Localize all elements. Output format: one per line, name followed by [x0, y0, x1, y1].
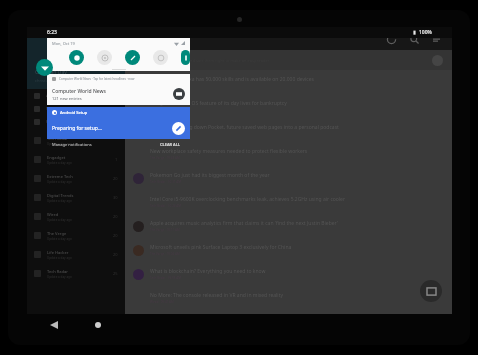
button[interactable]: Quick setting [153, 50, 168, 65]
button[interactable]: Amazon says Alexa has 50,000 skills and … [125, 70, 452, 94]
staticText: Life Hacker [47, 250, 69, 255]
button[interactable]: Quick setting [69, 50, 84, 65]
staticText: Pokemon Go just had its biggest month of… [150, 172, 270, 179]
button[interactable]: Computer World News · Tap for latest hea… [47, 74, 190, 105]
staticText: 20 [113, 233, 118, 238]
staticText: New workplace safety measures needed to … [150, 148, 308, 155]
staticText: Tech Radar [47, 136, 69, 141]
button[interactable]: Tech Radar [27, 131, 125, 150]
button[interactable]: Google's Chrome OS feature of its day li… [125, 94, 452, 118]
button[interactable]: Home [87, 314, 109, 336]
staticText: Read later [46, 119, 66, 124]
staticText: 20 [113, 214, 118, 219]
button[interactable]: Android Setup [47, 107, 190, 139]
staticText: Update a day ago [47, 161, 72, 165]
button[interactable]: Life Hacker [27, 245, 125, 264]
button[interactable]: Apple acquires music analytics firm that… [125, 214, 452, 238]
staticText: Starred [46, 106, 60, 111]
staticText: Update a day ago [47, 199, 72, 203]
staticText: What is blockchain? Everything you need … [150, 268, 266, 275]
button[interactable]: Sort [430, 32, 444, 46]
button[interactable]: All articles [27, 89, 125, 102]
staticText: Microsoft unveils pink Surface Laptop 3 … [150, 244, 292, 251]
button[interactable]: Refresh [384, 32, 398, 46]
button[interactable]: Wired [27, 207, 125, 226]
staticText: The Verge [47, 231, 67, 236]
staticText: Digital Trends [47, 193, 74, 198]
staticText: Update a day ago [47, 142, 72, 146]
staticText: Extreme Tech [47, 174, 73, 179]
button[interactable]: CLEAR ALL [118, 139, 190, 149]
button[interactable]: New workplace safety measures needed to … [125, 142, 452, 166]
staticText: 25 [113, 271, 118, 276]
staticText: Update a day ago [47, 237, 72, 241]
staticText: Christian Dav [35, 69, 67, 76]
staticText: Computer World News · Tap for latest hea… [59, 77, 135, 81]
button[interactable]: Search [407, 32, 421, 46]
staticText: Tech Radar [47, 269, 69, 274]
staticText: Computer World News [52, 88, 107, 95]
staticText: Apple acquires music analytics firm that… [150, 220, 338, 227]
staticText: How to organize your feeds and sort them… [135, 58, 270, 63]
staticText: Update a day ago [47, 180, 72, 184]
button[interactable]: No More: The console released in VR and … [125, 286, 452, 310]
staticText: Wired [47, 212, 59, 217]
staticText: Update a day ago [47, 218, 72, 222]
button[interactable]: Tech Radar [27, 264, 125, 283]
button[interactable]: Mark all read [420, 280, 442, 302]
button[interactable]: Back [43, 314, 65, 336]
staticText: All articles [46, 93, 66, 98]
staticText: 30 [113, 195, 118, 200]
button[interactable]: Manage notifications [47, 139, 118, 149]
staticText: Amazon says Alexa has 50,000 skills and … [150, 76, 314, 83]
button[interactable]: What is blockchain? Everything you need … [125, 262, 452, 286]
button[interactable]: Microsoft unveils pink Surface Laptop 3 … [125, 238, 452, 262]
staticText: Update a day ago [47, 275, 72, 279]
button[interactable]: Wi-Fi [36, 59, 53, 76]
button[interactable]: Quick setting [125, 50, 140, 65]
staticText: 20 [113, 176, 118, 181]
staticText: Update a day ago [47, 256, 72, 260]
staticText: Android Setup [60, 110, 88, 115]
staticText: 100% [419, 29, 432, 36]
button[interactable]: Pokemon Go just had its biggest month of… [125, 166, 452, 190]
button[interactable]: Starred [27, 102, 125, 115]
staticText: No More: The console released in VR and … [150, 292, 284, 299]
button[interactable]: Quick setting [97, 50, 112, 65]
staticText: Google's Chrome OS feature of its day li… [150, 100, 287, 107]
staticText: Wired · 10:51 AM [150, 132, 174, 136]
button[interactable]: How to organize your feeds and sort them… [125, 50, 452, 70]
button[interactable]: The Verge [27, 226, 125, 245]
staticText: Engadget [47, 155, 66, 160]
staticText: Manage notifications [52, 142, 92, 147]
staticText: Intel Core i5-9600K overclocking benchma… [150, 196, 346, 203]
staticText: 121 new entries [52, 96, 82, 101]
staticText: Mon, Oct 19 [52, 41, 75, 46]
staticText: 20 [113, 252, 118, 257]
staticText: 6:23 [47, 29, 57, 36]
button[interactable]: Read later [27, 115, 125, 128]
button[interactable]: Extreme Tech [27, 169, 125, 188]
button[interactable]: More [432, 55, 443, 66]
staticText: 1 [115, 157, 118, 162]
button[interactable]: Quick setting [181, 50, 190, 65]
button[interactable]: Mozilla is shutting down Pocket, future … [125, 118, 452, 142]
staticText: christian@gmail.com [35, 78, 75, 83]
staticText: CLEAR ALL [160, 142, 180, 147]
staticText: Preparing for setup... [52, 125, 172, 132]
staticText: Mozilla is shutting down Pocket, future … [150, 124, 339, 131]
button[interactable]: Digital Trends [27, 188, 125, 207]
button[interactable]: Engadget [27, 150, 125, 169]
